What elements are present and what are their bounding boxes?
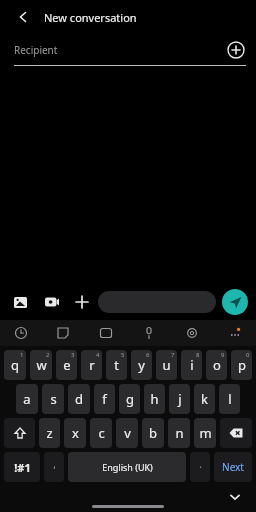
button[interactable]: Stickers <box>42 320 84 346</box>
button[interactable]: h <box>144 384 165 414</box>
staticText: k <box>201 390 208 408</box>
staticText: . <box>199 457 202 471</box>
button[interactable]: v <box>116 418 138 448</box>
staticText: 6 <box>146 351 150 359</box>
button[interactable]: Hide keyboard <box>224 486 246 508</box>
button[interactable]: m <box>194 418 216 448</box>
staticText: o <box>213 356 221 374</box>
button[interactable]: !#1 <box>4 452 40 482</box>
staticText: 7 <box>171 351 175 359</box>
staticText: 2 <box>46 351 50 359</box>
button[interactable]: s <box>42 384 64 414</box>
button[interactable]: Attach image <box>8 290 32 314</box>
button[interactable]: u <box>156 350 177 380</box>
button[interactable]: Next <box>214 452 252 482</box>
button[interactable]: y <box>131 350 152 380</box>
staticText: 5 <box>121 351 125 359</box>
button[interactable]: Back <box>10 4 36 30</box>
staticText: 8 <box>196 351 200 359</box>
button[interactable]: a <box>16 384 38 414</box>
staticText: p <box>238 356 246 374</box>
button[interactable] <box>98 291 216 313</box>
button[interactable]: Send <box>222 289 248 315</box>
button[interactable]: e <box>56 350 77 380</box>
staticText: m <box>199 424 212 442</box>
button[interactable]: x <box>64 418 86 448</box>
button[interactable]: More options <box>70 290 94 314</box>
button[interactable]: n <box>168 418 190 448</box>
staticText: l <box>228 390 232 408</box>
button[interactable]: Emoji <box>0 320 42 346</box>
button[interactable]: f <box>94 384 115 414</box>
staticText: New conversation <box>44 10 137 25</box>
staticText: w <box>36 356 47 374</box>
staticText: 9 <box>221 351 225 359</box>
staticText: 1 <box>20 351 24 359</box>
staticText: !#1 <box>14 460 31 475</box>
staticText: 4 <box>96 351 100 359</box>
staticText: Next <box>222 460 244 474</box>
staticText: y <box>138 356 145 374</box>
button[interactable]: Keyboard settings <box>170 320 213 346</box>
staticText: b <box>149 424 157 442</box>
staticText: s <box>50 390 57 408</box>
staticText: e <box>63 356 71 374</box>
staticText: t <box>114 356 119 374</box>
button[interactable]: i <box>181 350 202 380</box>
staticText: x <box>72 424 79 442</box>
button[interactable]: l <box>219 384 240 414</box>
staticText: h <box>150 390 159 408</box>
staticText: c <box>98 424 105 442</box>
button[interactable]: c <box>90 418 112 448</box>
staticText: Recipient <box>14 43 226 57</box>
staticText: z <box>46 424 53 442</box>
button[interactable]: , <box>44 452 64 482</box>
staticText: 3 <box>71 351 75 359</box>
staticText: v <box>124 424 131 442</box>
button[interactable]: j <box>169 384 190 414</box>
button[interactable]: g <box>119 384 140 414</box>
button[interactable]: d <box>68 384 90 414</box>
staticText: g <box>126 390 134 408</box>
button[interactable]: o <box>206 350 227 380</box>
button[interactable]: . <box>190 452 210 482</box>
staticText: r <box>89 356 95 374</box>
button[interactable]: r <box>81 350 102 380</box>
button[interactable]: Shift <box>4 418 35 448</box>
button[interactable]: z <box>39 418 60 448</box>
staticText: f <box>102 390 107 408</box>
staticText: a <box>23 390 31 408</box>
button[interactable]: t <box>106 350 127 380</box>
button[interactable]: Backspace <box>220 418 252 448</box>
button[interactable]: English (UK) <box>68 452 186 482</box>
staticText: j <box>178 390 182 408</box>
staticText: n <box>175 424 184 442</box>
button[interactable]: Add recipient <box>226 40 246 60</box>
button[interactable]: p <box>231 350 252 380</box>
button[interactable]: More <box>213 320 256 346</box>
staticText: d <box>75 390 83 408</box>
staticText: 0 <box>246 351 250 359</box>
staticText: English (UK) <box>102 461 153 473</box>
button[interactable]: k <box>194 384 215 414</box>
button[interactable]: Voice input <box>127 320 170 346</box>
button[interactable]: b <box>142 418 164 448</box>
button[interactable]: GIF <box>84 320 127 346</box>
button[interactable]: q <box>4 350 26 380</box>
staticText: u <box>162 356 171 374</box>
staticText: i <box>190 356 194 374</box>
button[interactable]: Camera <box>40 290 64 314</box>
button[interactable]: w <box>30 350 52 380</box>
staticText: q <box>11 356 19 374</box>
staticText: , <box>53 457 56 471</box>
